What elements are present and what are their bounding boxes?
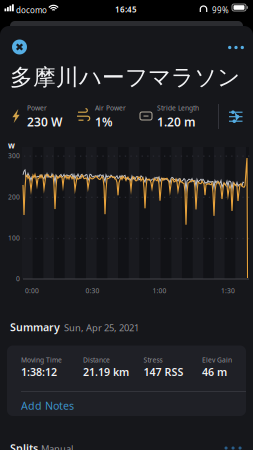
button[interactable]: Close [12,39,27,54]
staticText: Elev Gain [202,355,232,364]
staticText: Power [27,103,47,112]
staticText: 1.20 m [157,114,196,130]
staticText: docomo [16,5,47,15]
staticText: 230 W [27,114,62,130]
staticText: 1% [95,114,113,130]
staticText: Stride Length [157,103,199,112]
staticText: 21.19 km [83,365,129,379]
button[interactable]: Add Notes [21,397,91,413]
staticText: Moving Time [21,355,62,364]
staticText: Splits [10,441,38,450]
staticText: 147 RSS [143,365,183,379]
staticText: 200 [8,192,20,201]
staticText: w [8,140,15,151]
staticText: Add Notes [21,398,74,413]
staticText: 99% [212,5,229,15]
staticText: 1:30 [221,286,235,295]
staticText: 0:00 [25,286,39,295]
staticText: Summary [10,320,60,334]
button[interactable]: More [225,40,247,54]
staticText: 0 [16,274,20,283]
button[interactable]: Splits options [224,446,242,450]
staticText: Sun, Apr 25, 2021 [64,321,139,334]
staticText: 16:45 [115,4,137,15]
staticText: Distance [83,355,110,364]
staticText: 0:30 [85,286,99,295]
staticText: 300 [8,151,20,160]
staticText: Manual [41,442,73,450]
staticText: 100 [8,234,20,242]
staticText: 1:38:12 [21,365,57,379]
staticText: 多摩川ハーフマラソン [10,63,240,91]
staticText: 46 m [202,365,227,379]
staticText: Air Power [95,103,126,112]
button[interactable]: Chart options [228,108,244,124]
staticText: 1:00 [152,286,166,295]
staticText: Stress [143,355,162,364]
